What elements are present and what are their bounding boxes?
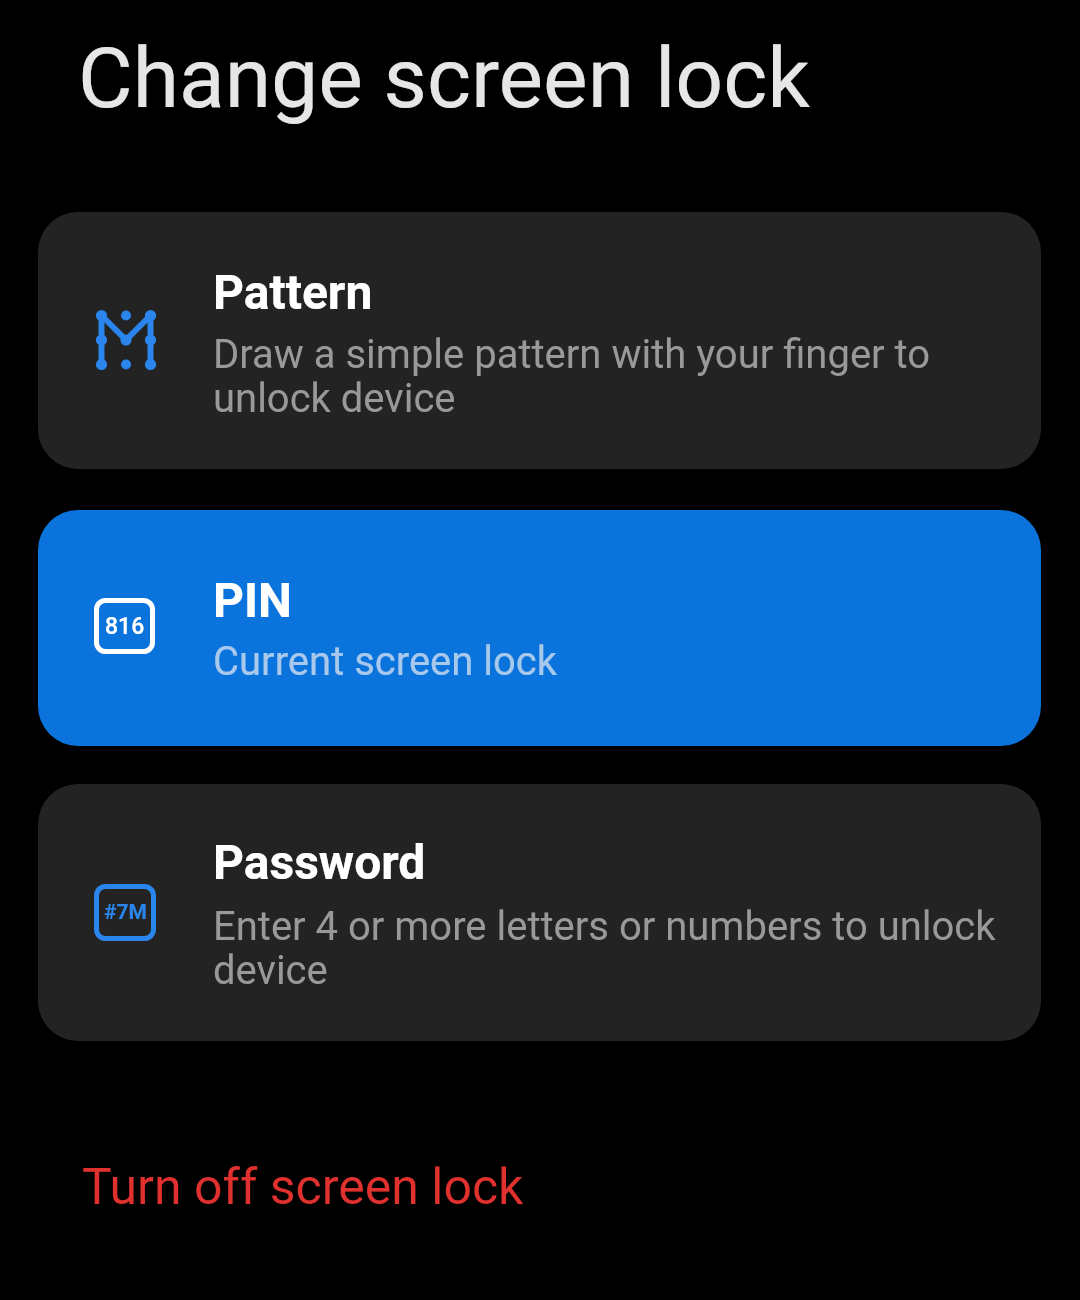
- button[interactable]: Turn off screen lock: [82, 1158, 524, 1217]
- staticText: PIN: [213, 572, 292, 628]
- staticText: #7M: [104, 900, 147, 925]
- button[interactable]: 816: [38, 510, 1041, 746]
- staticText: 816: [105, 613, 145, 640]
- button[interactable]: Pattern: [38, 212, 1041, 469]
- staticText: Password: [213, 834, 426, 890]
- staticText: Pattern: [213, 264, 373, 320]
- staticText: Current screen lock: [213, 638, 558, 685]
- staticText: Draw a simple pattern with your finger t…: [213, 331, 931, 422]
- staticText: Enter 4 or more letters or numbers to un…: [213, 903, 996, 994]
- staticText: Change screen lock: [78, 29, 810, 127]
- button[interactable]: #7M: [38, 784, 1041, 1041]
